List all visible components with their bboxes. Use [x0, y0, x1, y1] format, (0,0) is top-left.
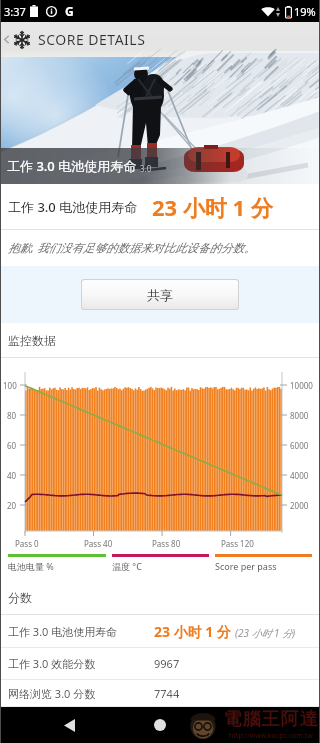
staticText: 23 小时 1 分 — [154, 622, 231, 641]
staticText: (23 小时 1 分) — [235, 626, 296, 640]
button[interactable]: 共享 — [82, 280, 238, 309]
staticText: 6000 — [290, 440, 309, 451]
staticText: 工作 3.0 电池使用寿命 — [7, 157, 137, 175]
staticText: 温度 °C — [112, 560, 142, 572]
staticText: 3.0 — [140, 163, 152, 174]
staticText: 19% — [294, 4, 316, 19]
staticText: SCORE DETAILS — [38, 30, 146, 49]
staticText: 10000 — [290, 380, 313, 391]
staticText: 分数 — [8, 590, 32, 605]
staticText: 9967 — [154, 656, 180, 671]
staticText: 3:37 — [4, 4, 26, 19]
staticText: Score per pass — [215, 560, 277, 572]
staticText: Pass 40 — [84, 538, 113, 549]
staticText: 工作 3.0 电池使用寿命 — [8, 198, 138, 216]
button[interactable]: 网络浏览 3.0 分数 — [0, 680, 320, 707]
staticText: 抱歉, 我们没有足够的数据来对比此设备的分数。 — [8, 240, 256, 256]
staticText: 共享 — [147, 287, 173, 303]
button[interactable]: Back — [0, 22, 13, 57]
staticText: 网络浏览 3.0 分数 — [8, 686, 96, 701]
button[interactable]: 工作 3.0 效能分数 — [0, 648, 320, 680]
staticText: Pass 120 — [221, 538, 254, 549]
staticText: 60 — [7, 440, 17, 451]
staticText: 100 — [3, 380, 17, 391]
staticText: 4000 — [290, 470, 309, 481]
button[interactable]: Back — [46, 707, 92, 743]
staticText: 20 — [7, 500, 17, 511]
staticText: 电池电量 % — [8, 560, 54, 572]
staticText: Pass 0 — [15, 538, 39, 549]
staticText: 监控数据 — [8, 333, 56, 348]
staticText: 7744 — [154, 686, 180, 701]
staticText: 80 — [7, 410, 17, 421]
button[interactable]: Recent apps — [229, 707, 275, 743]
staticText: 工作 3.0 效能分数 — [8, 656, 96, 671]
staticText: 23 小时 1 分 — [152, 192, 273, 222]
staticText: http://www.kocpc.com.tw — [229, 731, 313, 741]
staticText: 電腦王阿達 — [223, 708, 318, 731]
button[interactable]: Home — [137, 707, 183, 743]
staticText: 8000 — [290, 410, 309, 421]
button[interactable]: 工作 3.0 电池使用寿命 — [0, 615, 320, 648]
staticText: G — [65, 3, 74, 19]
staticText: 40 — [7, 470, 17, 481]
staticText: 工作 3.0 电池使用寿命 — [8, 624, 118, 639]
staticText: 2000 — [290, 500, 309, 511]
staticText: Pass 80 — [152, 538, 181, 549]
